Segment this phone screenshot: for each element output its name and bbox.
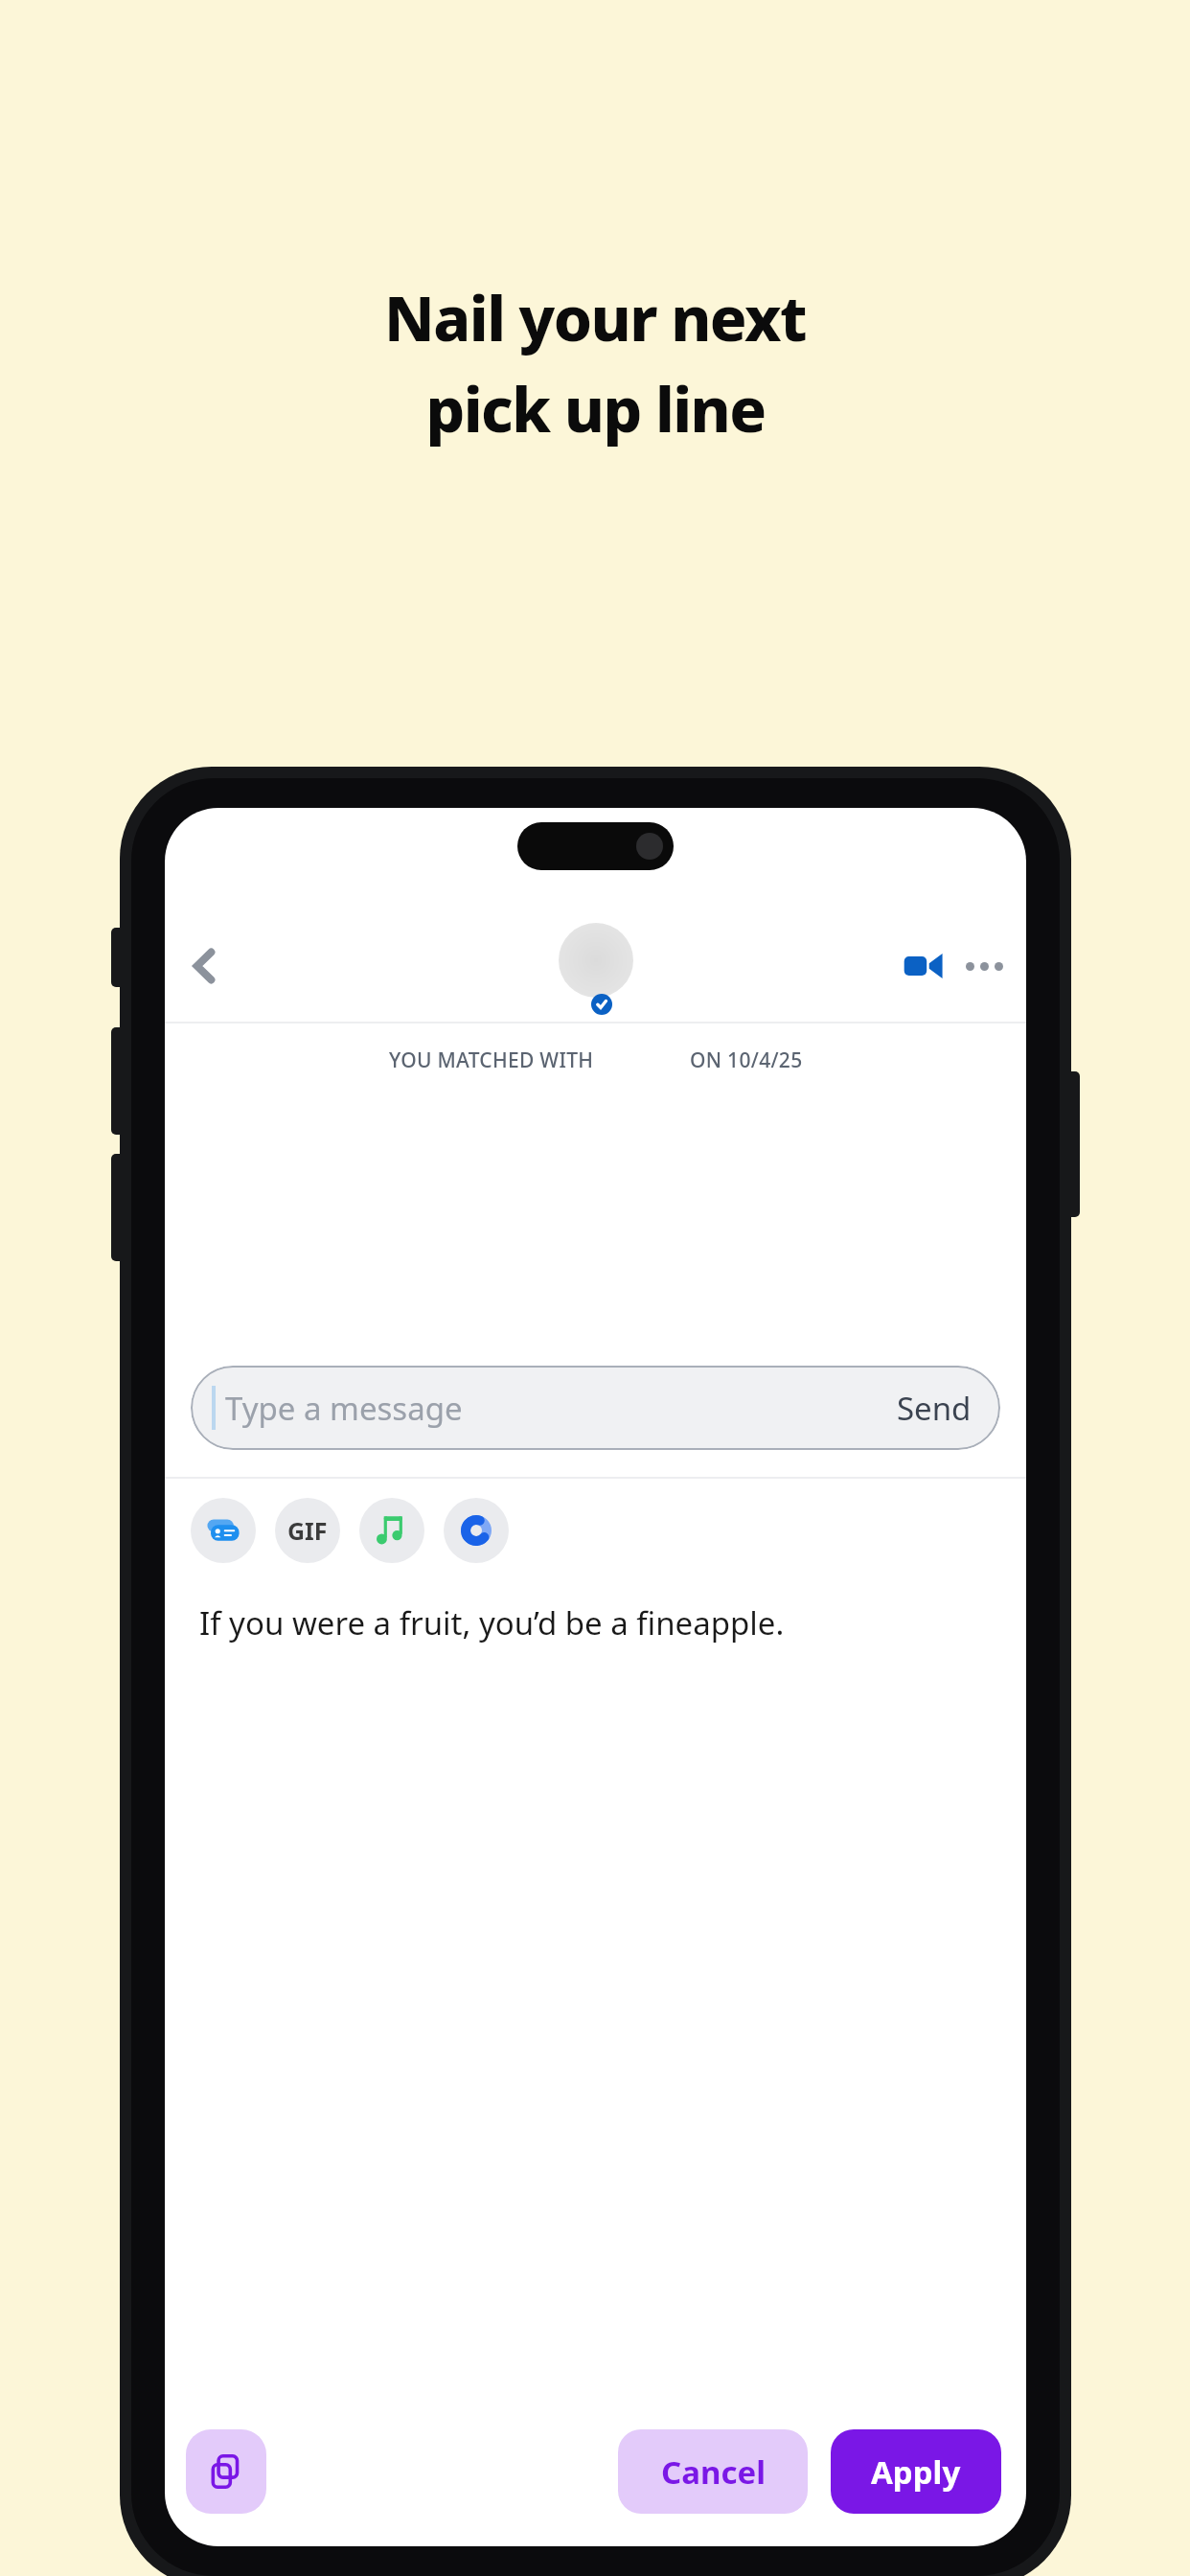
button[interactable] (559, 923, 633, 998)
button[interactable]: Video call (894, 937, 951, 995)
staticText: GIF (287, 1514, 328, 1547)
button[interactable]: Stickers (191, 1498, 256, 1563)
button[interactable]: Type a message (191, 1366, 1000, 1450)
staticText: Nail your next (384, 276, 806, 359)
staticText: Cancel (661, 2450, 766, 2494)
button[interactable]: GIF (275, 1498, 340, 1563)
staticText: Apply (871, 2450, 961, 2494)
staticText: Send (897, 1387, 972, 1430)
button[interactable]: Copy (186, 2429, 266, 2514)
staticText: pick up line (425, 367, 766, 450)
button[interactable]: Cancel (618, 2429, 808, 2514)
button[interactable]: Apply (831, 2429, 1001, 2514)
button[interactable]: Back (176, 937, 234, 995)
button[interactable]: Spotify (444, 1498, 509, 1563)
staticText: Type a message (225, 1387, 463, 1430)
button[interactable]: More options (955, 937, 1013, 995)
button[interactable]: Music (359, 1498, 424, 1563)
staticText: If you were a fruit, you’d be a fineappl… (199, 1601, 785, 1644)
staticText: ON 10/4/25 (690, 1046, 803, 1074)
staticText: YOU MATCHED WITH (389, 1046, 594, 1074)
